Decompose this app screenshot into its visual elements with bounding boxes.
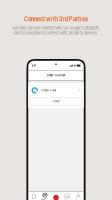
button[interactable]: Add device bbox=[50, 195, 62, 200]
staticText: Smart Connect bbox=[46, 74, 65, 77]
staticText: 9:41 bbox=[32, 64, 36, 67]
staticText: Connect bbox=[52, 100, 60, 103]
staticText: but it is possible to connect with 3rd p… bbox=[14, 30, 98, 35]
button[interactable]: Connect bbox=[31, 98, 81, 105]
staticText: Smart Connect bbox=[41, 198, 48, 200]
button[interactable]: Widget bbox=[62, 193, 73, 200]
staticText: Connect with 3rd Parties bbox=[24, 16, 88, 23]
staticText: Not only can you connect with SK magic's… bbox=[12, 26, 100, 30]
button[interactable]: Smart Connect bbox=[39, 192, 50, 200]
button[interactable]: My Page bbox=[73, 193, 84, 200]
staticText: Amazon Alexa bbox=[41, 89, 56, 92]
button[interactable]: Home bbox=[28, 193, 39, 200]
